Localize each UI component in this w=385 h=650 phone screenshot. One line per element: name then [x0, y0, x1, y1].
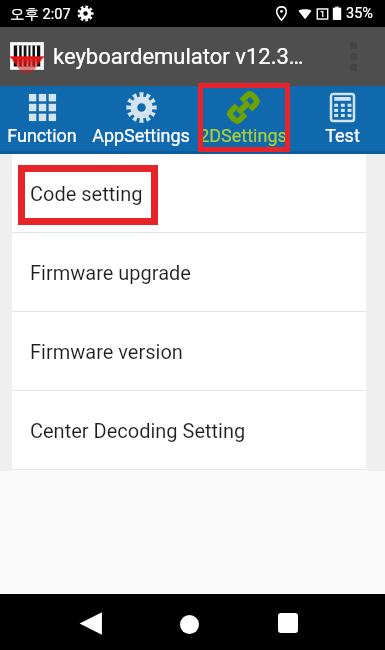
button[interactable]: Test [299, 86, 385, 154]
staticText: 2DSettings [199, 125, 287, 146]
staticText: Firmware version [30, 340, 183, 363]
staticText: AppSettings [92, 125, 190, 146]
button[interactable]: Firmware upgrade [12, 233, 366, 312]
staticText: Code setting [30, 182, 143, 205]
staticText: 35% [346, 5, 373, 22]
button[interactable]: Back [66, 599, 114, 647]
staticText: Function [7, 125, 77, 146]
button[interactable]: Home [165, 600, 213, 648]
staticText: Firmware upgrade [30, 261, 191, 284]
button[interactable]: Function [0, 86, 88, 154]
button[interactable]: 2DSettings [195, 86, 291, 154]
button[interactable]: Center Decoding Setting [12, 391, 366, 470]
staticText: 오후 2:07 [10, 5, 71, 23]
button[interactable]: AppSettings [91, 86, 191, 154]
button[interactable]: Recent apps [264, 599, 312, 647]
staticText: keyboardemulator v12.3… [53, 44, 304, 70]
staticText: Center Decoding Setting [30, 419, 246, 442]
button[interactable]: Code setting [12, 154, 366, 233]
staticText: Test [325, 125, 360, 146]
button[interactable]: Firmware version [12, 312, 366, 391]
